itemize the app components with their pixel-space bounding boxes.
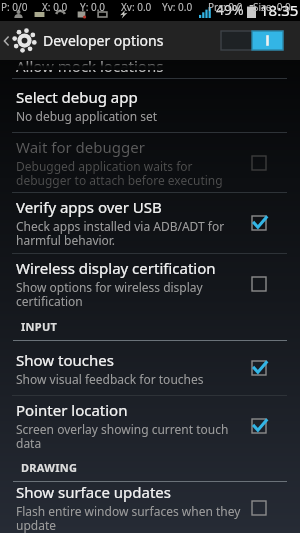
staticText: Select debug app xyxy=(16,87,138,107)
staticText: Show visual feedback for touches xyxy=(16,371,204,387)
staticText: Developer options xyxy=(43,31,164,50)
button[interactable]: Show surface updates xyxy=(0,482,300,533)
button[interactable]: Checkbox xyxy=(248,415,270,437)
staticText: Y: 0.0 xyxy=(80,0,106,14)
staticText: P: 0/0 xyxy=(1,0,28,14)
staticText: INPUT xyxy=(21,319,58,334)
button[interactable]: Verify apps over USB xyxy=(0,193,300,253)
staticText: Show touches xyxy=(16,350,114,370)
staticText: Prs: 0.0 xyxy=(208,0,243,14)
button[interactable]: Checkbox xyxy=(248,357,270,379)
button[interactable]: Checkbox xyxy=(248,273,270,295)
button[interactable]: Wait for debugger xyxy=(0,133,300,192)
staticText: Debugged application waits for debugger … xyxy=(16,158,241,189)
button[interactable]: Checkbox xyxy=(248,497,270,519)
staticText: X: 0.0 xyxy=(42,0,68,14)
staticText: Pointer location xyxy=(16,400,128,420)
staticText: Flash entire window surfaces when they u… xyxy=(16,503,241,533)
staticText: Allow mock locations xyxy=(16,56,164,74)
staticText: Screen overlay showing current touch dat… xyxy=(16,421,241,452)
staticText: Wireless display certification xyxy=(16,258,216,278)
staticText: Show surface updates xyxy=(16,482,171,502)
staticText: Xv: 0.0 xyxy=(121,0,152,14)
button[interactable]: Checkbox xyxy=(248,152,270,174)
staticText: Show options for wireless display certif… xyxy=(16,279,241,310)
staticText: Size: 0.0 xyxy=(253,0,291,14)
staticText: Yv: 0.0 xyxy=(162,0,193,14)
staticText: Check apps installed via ADB/ADT for har… xyxy=(16,218,241,249)
button[interactable]: Wireless display certification xyxy=(0,254,300,314)
button[interactable]: Show touches xyxy=(0,341,300,395)
button[interactable]: Navigate up xyxy=(0,28,40,53)
staticText: DRAWING xyxy=(21,460,78,475)
staticText: 18:35 xyxy=(260,0,299,18)
staticText: No debug application set xyxy=(16,108,158,124)
staticText: Verify apps over USB xyxy=(16,197,162,217)
button[interactable]: Pointer location xyxy=(0,396,300,455)
staticText: 49% xyxy=(216,0,244,18)
button[interactable]: Select debug app xyxy=(0,79,300,132)
button[interactable]: Checkbox xyxy=(248,212,270,234)
staticText: Wait for debugger xyxy=(16,137,145,157)
button[interactable]: Toggle developer options xyxy=(221,31,283,50)
